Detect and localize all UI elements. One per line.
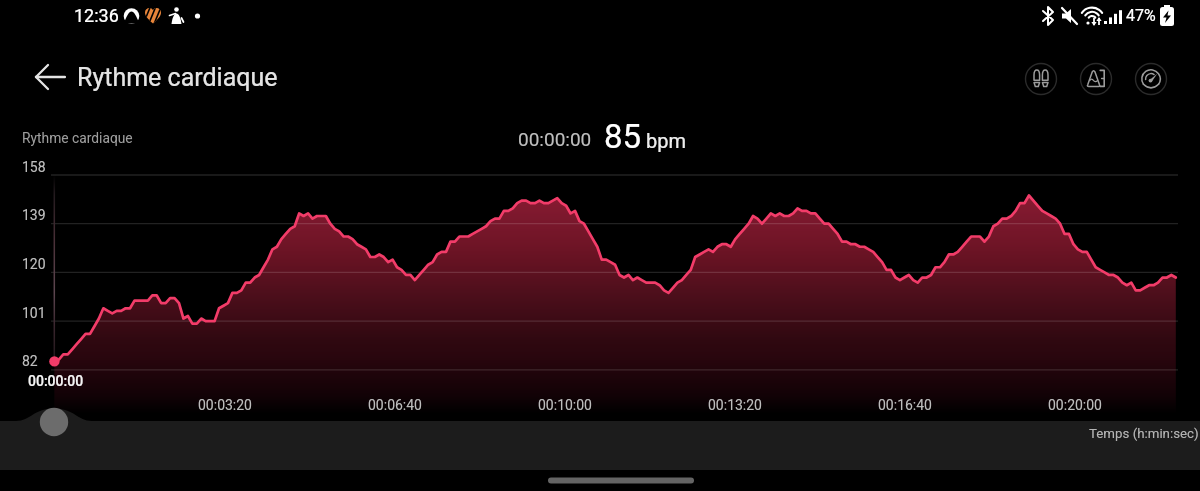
staticText: 00:00:00 — [518, 128, 592, 150]
button[interactable]: Scrub timeline — [36, 404, 72, 440]
staticText: 00:00:00 — [28, 373, 84, 389]
staticText: 12:36 — [74, 5, 119, 26]
staticText: 158 — [22, 159, 46, 175]
button[interactable]: Back — [22, 55, 66, 99]
staticText: 47% — [1126, 6, 1156, 25]
staticText: 00:16:40 — [878, 397, 932, 413]
button[interactable]: Speed — [1130, 58, 1172, 100]
staticText: 00:13:20 — [708, 397, 762, 413]
staticText: 82 — [22, 353, 38, 369]
button[interactable]: Steps — [1020, 58, 1062, 100]
button[interactable]: Heart rate chart — [54, 175, 1178, 370]
button[interactable]: Home — [540, 471, 702, 489]
staticText: 00:10:00 — [538, 397, 592, 413]
staticText: bpm — [646, 129, 686, 152]
staticText: 101 — [22, 305, 46, 321]
staticText: Temps (h:min:sec) — [1089, 426, 1199, 442]
staticText: Rythme cardiaque — [77, 63, 278, 92]
staticText: 139 — [22, 207, 46, 223]
staticText: 00:03:20 — [198, 397, 252, 413]
staticText: 85 — [604, 117, 642, 156]
button[interactable]: Altitude — [1075, 58, 1117, 100]
staticText: 00:20:00 — [1048, 397, 1102, 413]
staticText: 00:06:40 — [368, 397, 422, 413]
staticText: 120 — [22, 256, 46, 272]
staticText: Rythme cardiaque — [22, 130, 133, 146]
